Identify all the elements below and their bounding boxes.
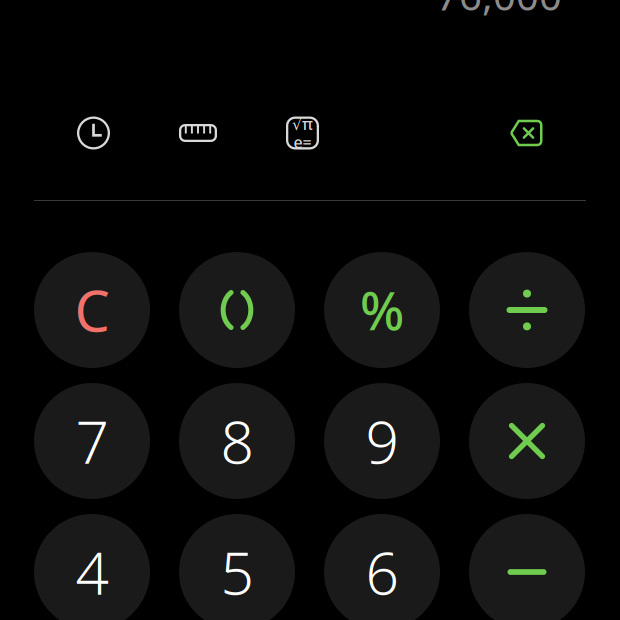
- button[interactable]: Percent: [324, 252, 440, 368]
- button[interactable]: Unit converter: [179, 124, 217, 142]
- staticText: 5: [220, 533, 253, 611]
- staticText: C: [74, 273, 109, 347]
- button[interactable]: 7: [34, 383, 150, 499]
- staticText: 7: [75, 402, 108, 480]
- button[interactable]: Clear: [34, 252, 150, 368]
- staticText: 76,000: [436, 0, 562, 21]
- staticText: √π: [292, 113, 313, 134]
- button[interactable]: Multiply: [469, 383, 585, 499]
- button[interactable]: Divide: [469, 252, 585, 368]
- button[interactable]: 4: [34, 514, 150, 620]
- button[interactable]: 8: [179, 383, 295, 499]
- button[interactable]: Delete: [509, 120, 542, 146]
- button[interactable]: Parentheses: [179, 252, 295, 368]
- staticText: 6: [365, 533, 398, 611]
- button[interactable]: History: [77, 116, 110, 149]
- button[interactable]: Scientific calculator: [286, 116, 319, 149]
- staticText: e=: [293, 131, 311, 153]
- button[interactable]: 6: [324, 514, 440, 620]
- button[interactable]: 9: [324, 383, 440, 499]
- staticText: 9: [365, 402, 398, 480]
- staticText: 8: [220, 402, 253, 480]
- staticText: %: [360, 275, 404, 345]
- staticText: 4: [75, 533, 108, 611]
- button[interactable]: Subtract: [469, 514, 585, 620]
- button[interactable]: 5: [179, 514, 295, 620]
